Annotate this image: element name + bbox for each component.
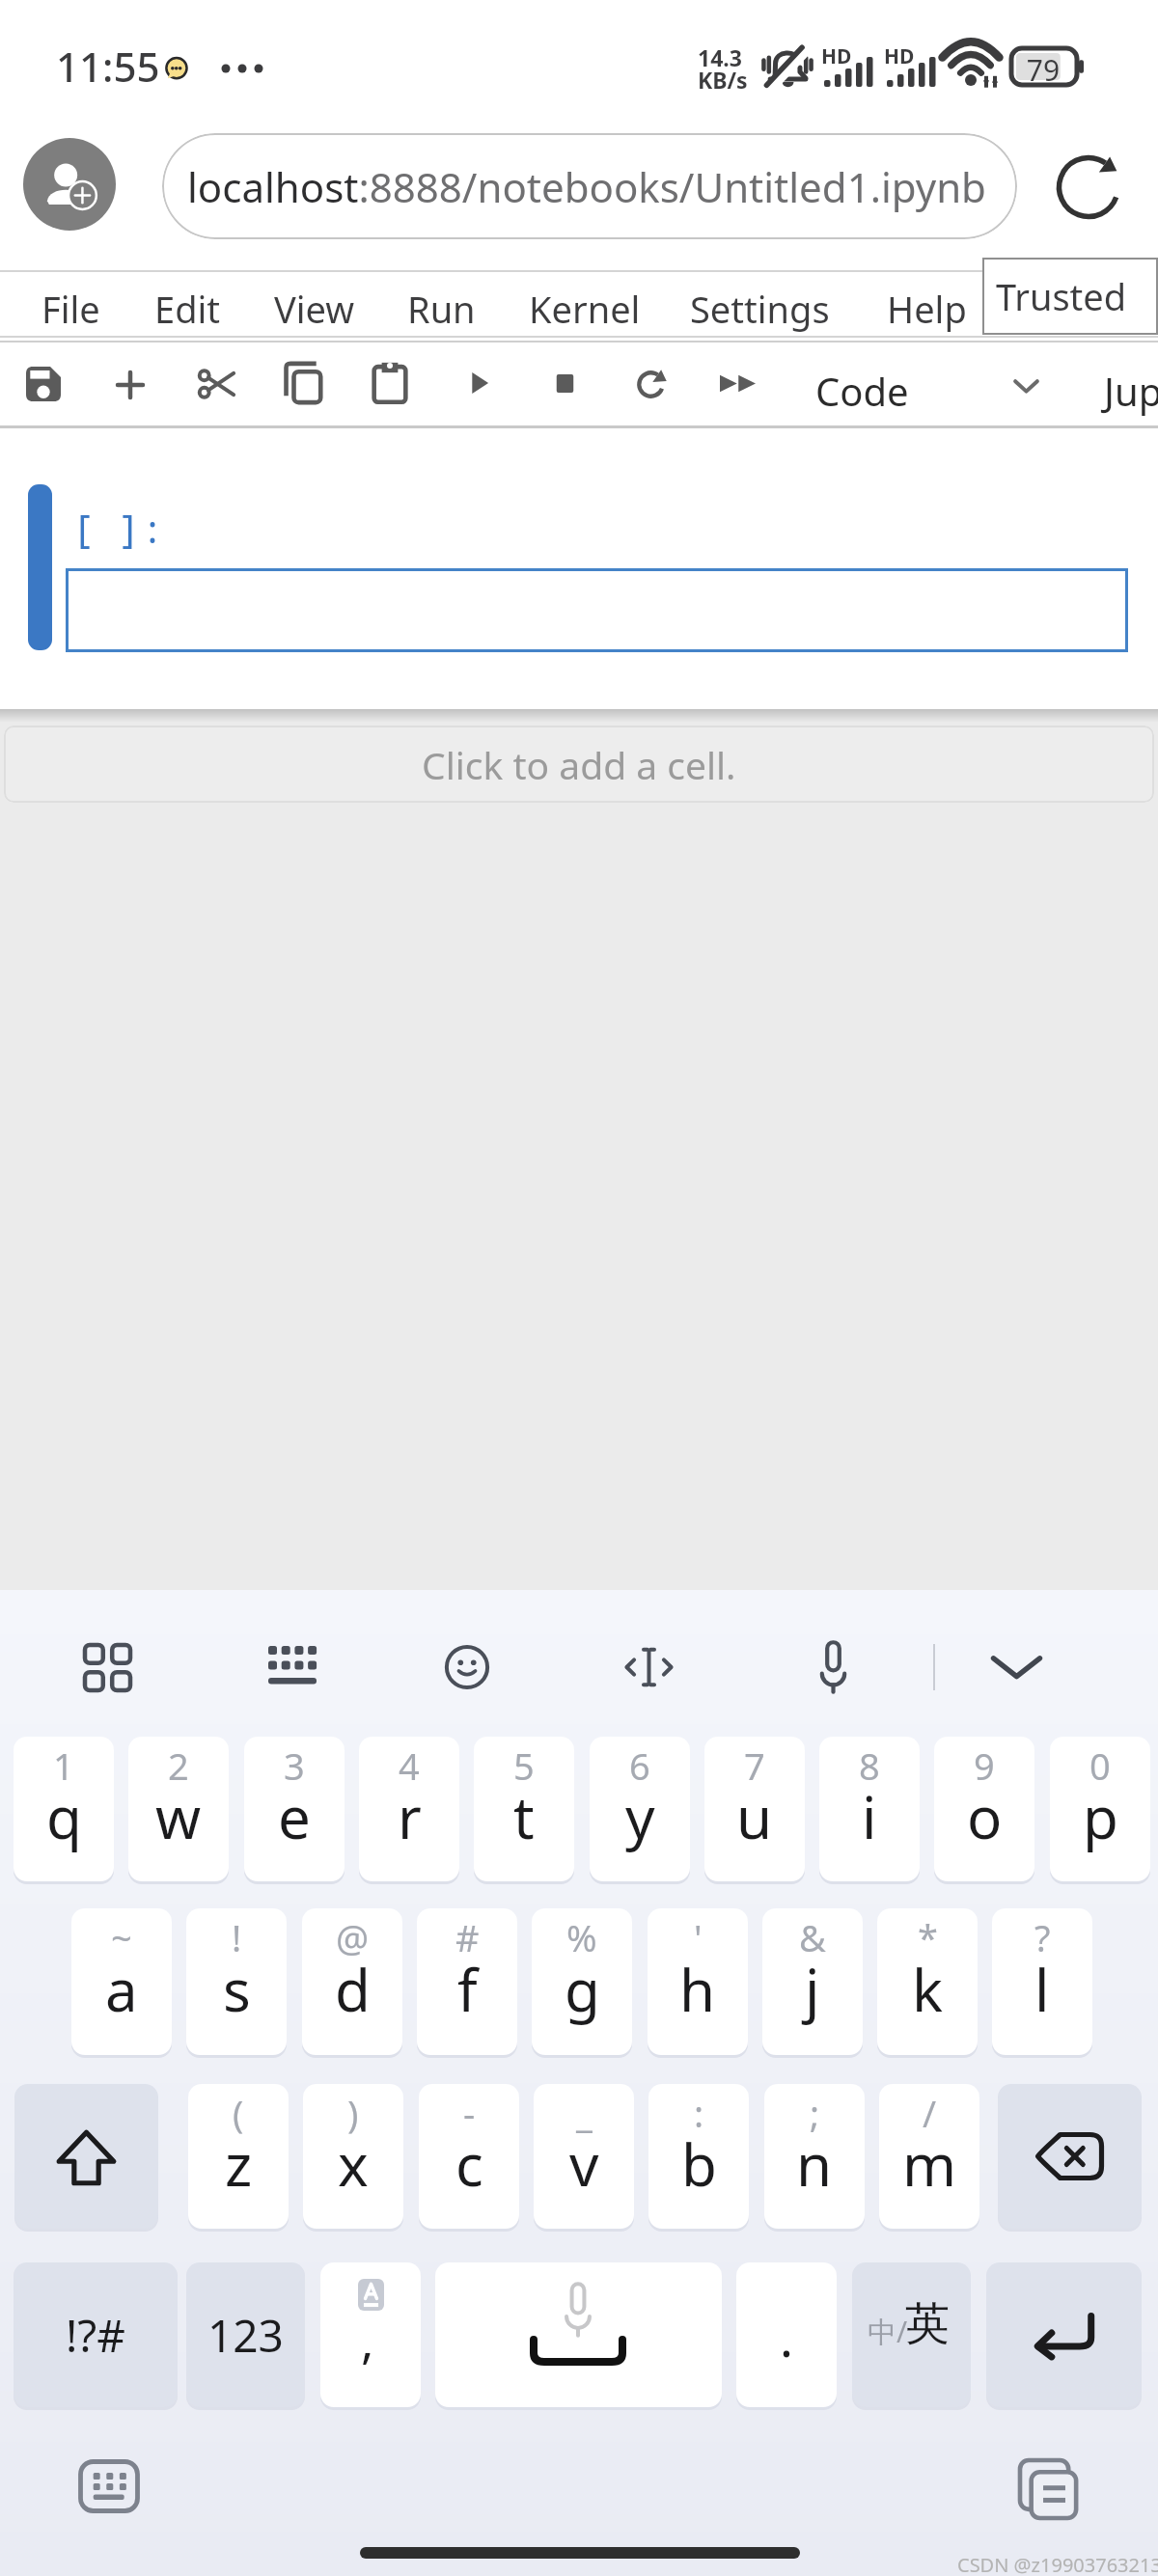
button[interactable]: * [877, 1908, 978, 2055]
button[interactable]: !?# [14, 2262, 178, 2407]
staticText: y [625, 1777, 655, 1856]
button[interactable]: _ [534, 2084, 634, 2229]
button[interactable]: - [419, 2084, 519, 2229]
staticText: 123 [207, 2305, 284, 2366]
button[interactable] [720, 372, 756, 395]
button[interactable]: @ [302, 1908, 402, 2055]
button[interactable] [852, 2262, 971, 2407]
staticText: a [105, 1950, 138, 2029]
button[interactable] [199, 365, 235, 403]
button[interactable]: 9 [934, 1737, 1034, 1881]
staticText: j [805, 1950, 820, 2029]
staticText: n [796, 2124, 833, 2204]
button[interactable] [468, 370, 491, 396]
staticText: 6 [629, 1740, 650, 1791]
button[interactable]: ) [303, 2084, 403, 2229]
button[interactable] [78, 2459, 140, 2513]
staticText: t [513, 1777, 535, 1856]
staticText: @ [336, 1912, 370, 1962]
button[interactable]: Code [815, 365, 909, 417]
button[interactable]: 4 [359, 1737, 459, 1881]
button[interactable] [285, 363, 321, 403]
staticText: l [1034, 1950, 1050, 2029]
staticText: ' [694, 1912, 703, 1962]
button[interactable] [1054, 152, 1123, 222]
button[interactable]: Click to add a cell. [4, 726, 1154, 803]
staticText: localhost:8888/notebooks/Untitled1.ipynb [187, 159, 986, 214]
button[interactable] [812, 1640, 855, 1694]
button[interactable] [372, 362, 408, 403]
button[interactable]: % [532, 1908, 632, 2055]
button[interactable]: File [41, 284, 100, 334]
button[interactable] [444, 1644, 490, 1690]
button[interactable] [622, 1644, 675, 1690]
button[interactable] [435, 2262, 722, 2407]
button[interactable]: ' [648, 1908, 748, 2055]
button[interactable]: ~ [71, 1908, 172, 2055]
button[interactable]: & [762, 1908, 863, 2055]
button[interactable]: Run [407, 284, 476, 334]
staticText: : [694, 2088, 704, 2138]
staticText: # [455, 1912, 480, 1962]
staticText: m [902, 2124, 957, 2204]
button[interactable] [1013, 378, 1039, 394]
staticText: 14.3 [698, 42, 742, 72]
button[interactable] [635, 369, 667, 400]
staticText: e [278, 1777, 311, 1856]
staticText: ) [347, 2088, 359, 2138]
button[interactable]: # [417, 1908, 517, 2055]
button[interactable] [989, 1653, 1044, 1681]
staticText: g [565, 1950, 600, 2029]
staticText: - [463, 2088, 476, 2138]
staticText: z [225, 2124, 253, 2204]
button[interactable]: ; [764, 2084, 865, 2229]
button[interactable] [66, 568, 1128, 652]
staticText: . [780, 2303, 793, 2371]
button[interactable] [26, 367, 61, 401]
button[interactable] [998, 2084, 1142, 2229]
staticText: 8 [859, 1740, 880, 1791]
button[interactable]: 7 [704, 1737, 805, 1881]
staticText: 2 [168, 1740, 189, 1791]
button[interactable] [320, 2262, 421, 2407]
button[interactable]: Settings [690, 284, 830, 334]
button[interactable]: View [274, 284, 355, 334]
button[interactable]: ( [188, 2084, 289, 2229]
button[interactable]: 2 [128, 1737, 229, 1881]
button[interactable] [986, 2262, 1142, 2407]
button[interactable] [554, 371, 576, 396]
button[interactable] [268, 1646, 317, 1685]
button[interactable]: localhost:8888/notebooks/Untitled1.ipynb [162, 133, 1017, 239]
button[interactable]: 8 [819, 1737, 920, 1881]
staticText: [ ]: [71, 502, 164, 554]
button[interactable]: 0 [1050, 1737, 1150, 1881]
staticText: 9 [974, 1740, 995, 1791]
button[interactable]: 3 [244, 1737, 345, 1881]
staticText: h [679, 1950, 716, 2029]
button[interactable]: 123 [186, 2262, 305, 2407]
staticText: * [918, 1912, 938, 1962]
button[interactable] [116, 370, 145, 399]
button[interactable]: : [648, 2084, 749, 2229]
button[interactable]: Kernel [529, 284, 641, 334]
button[interactable]: / [879, 2084, 979, 2229]
staticText: HD [884, 42, 915, 70]
button[interactable]: . [736, 2262, 837, 2407]
button[interactable]: 6 [590, 1737, 690, 1881]
button[interactable]: ? [992, 1908, 1092, 2055]
button[interactable]: Edit [154, 284, 221, 334]
button[interactable]: Help [887, 284, 967, 334]
button[interactable] [14, 2084, 158, 2229]
button[interactable]: 5 [474, 1737, 574, 1881]
staticText: p [1083, 1777, 1118, 1856]
button[interactable] [23, 138, 116, 231]
staticText: HD [821, 42, 852, 70]
button[interactable]: 1 [14, 1737, 114, 1881]
button[interactable]: Trusted [982, 258, 1158, 335]
staticText: 5 [513, 1740, 535, 1791]
button[interactable] [1018, 2458, 1078, 2518]
button[interactable]: ! [186, 1908, 287, 2055]
staticText: 4 [399, 1740, 420, 1791]
staticText: i [862, 1777, 877, 1856]
button[interactable] [85, 1645, 130, 1690]
